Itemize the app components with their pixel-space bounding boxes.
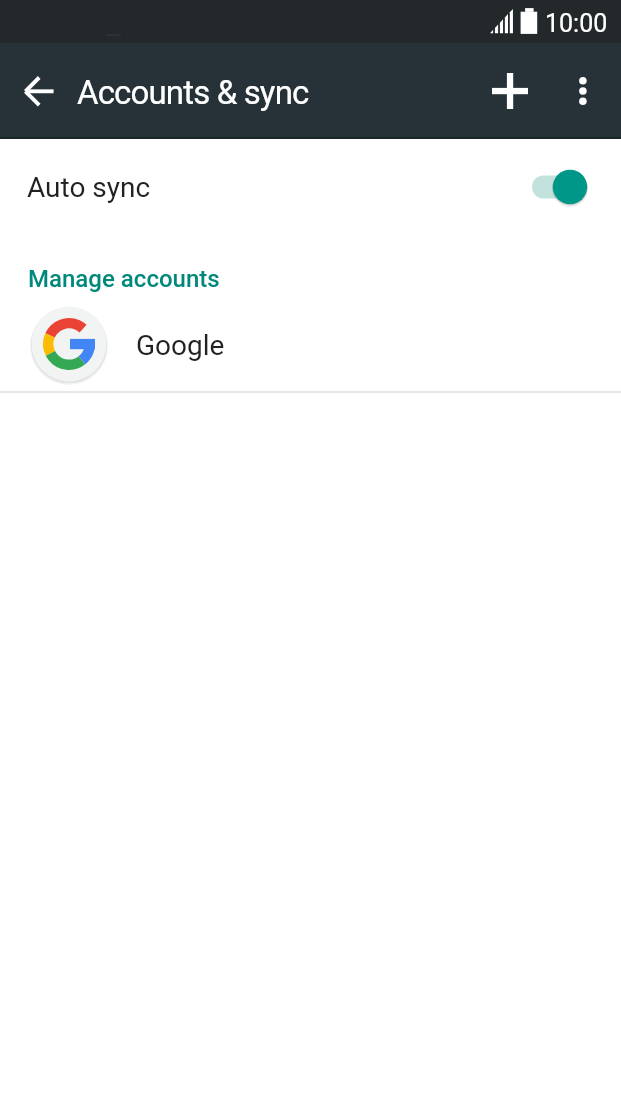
button[interactable]: More options bbox=[553, 61, 613, 121]
button[interactable]: Navigate up bbox=[8, 61, 68, 121]
button[interactable]: Auto sync toggle, on bbox=[532, 165, 590, 209]
button[interactable]: Google bbox=[0, 298, 621, 390]
staticText: Manage accounts bbox=[28, 265, 220, 293]
button[interactable]: Auto sync bbox=[0, 140, 621, 234]
button[interactable]: Add account bbox=[480, 61, 540, 121]
staticText: Accounts & sync bbox=[77, 73, 309, 112]
staticText: Auto sync bbox=[27, 171, 151, 204]
staticText: 10:00 bbox=[545, 9, 608, 38]
staticText: Google bbox=[136, 329, 225, 362]
